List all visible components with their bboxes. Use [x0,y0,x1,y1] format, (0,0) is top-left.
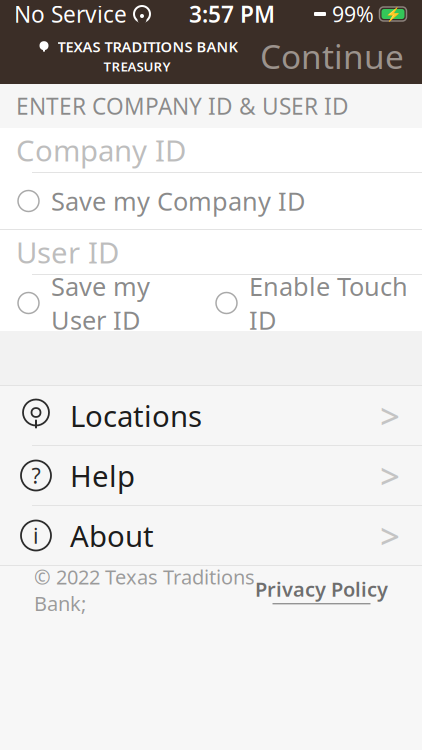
staticText: Locations [70,396,202,435]
button[interactable]: Enable Touch ID [216,261,408,345]
button[interactable]: ? [0,446,422,505]
staticText: TREASURY [103,57,170,75]
button[interactable]: i [0,506,422,565]
staticText: Continue [260,34,404,78]
staticText: About [70,516,154,555]
staticText: Help [70,456,135,495]
staticText: i [33,521,39,550]
staticText: Company ID [16,130,186,169]
staticText: 3:57 PM [189,0,275,29]
button[interactable]: Privacy Policy [255,576,388,604]
staticText: > [380,512,400,558]
staticText: Privacy Policy [255,576,388,602]
staticText: Enable Touch ID [249,269,408,337]
staticText: ? [31,461,40,490]
staticText: Save my Company ID [51,184,305,218]
staticText: TEXAS TRADITIONS BANK [57,37,237,56]
button[interactable]: Save my User ID [18,261,150,345]
button[interactable]: User ID [0,230,422,274]
staticText: 99% [332,0,374,28]
staticText: > [380,392,400,438]
staticText: > [380,452,400,498]
button[interactable]: Locations [0,386,422,445]
button[interactable]: Company ID [0,128,422,172]
staticText: ⚡ [384,6,401,22]
button[interactable]: Save my Company ID [18,176,305,226]
staticText: ENTER COMPANY ID & USER ID [16,91,349,121]
staticText: User ID [16,232,119,271]
staticText: Save my User ID [51,269,150,337]
button[interactable]: Continue [250,28,414,84]
staticText: © 2022 Texas Traditions Bank; [34,563,255,616]
staticText: No Service [14,0,127,29]
